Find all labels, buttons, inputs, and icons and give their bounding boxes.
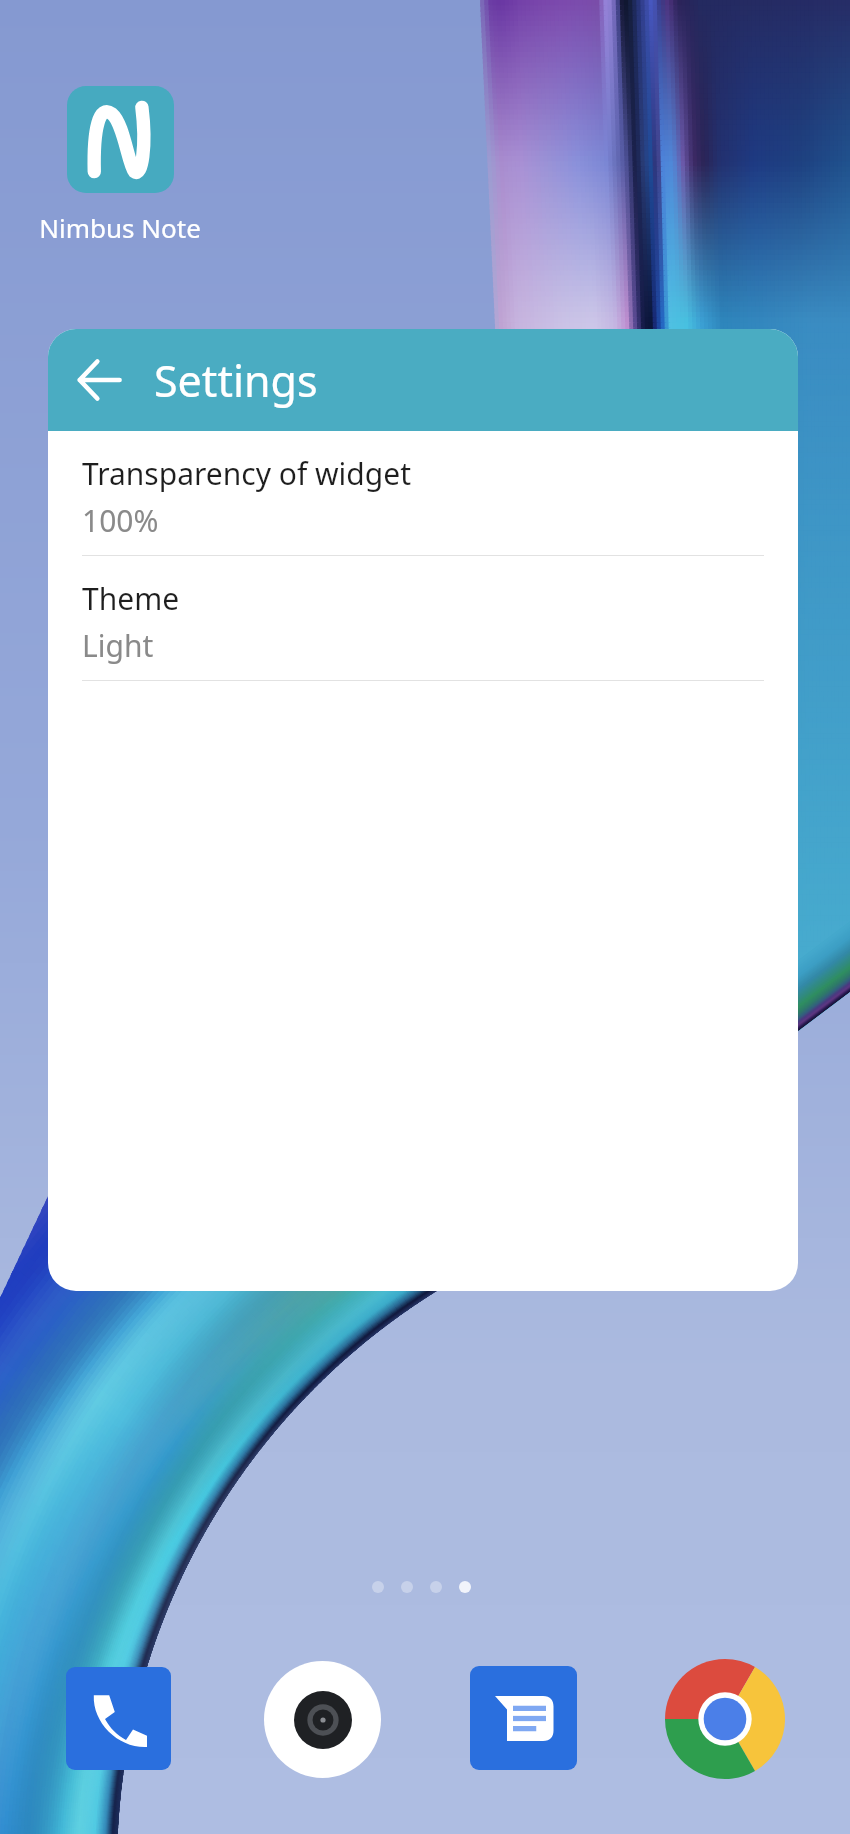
staticText: Theme [82, 578, 180, 619]
button[interactable]: Phone [66, 1667, 171, 1770]
staticText: Nimbus Note [39, 210, 201, 245]
staticText: 100% [82, 500, 159, 541]
button[interactable]: Nimbus Note [36, 86, 204, 245]
staticText: Settings [154, 351, 318, 410]
button[interactable]: Camera [264, 1661, 381, 1778]
button[interactable]: Back [48, 329, 150, 431]
staticText: Transparency of widget [82, 453, 411, 494]
button[interactable]: Transparency of widget [48, 431, 798, 556]
staticText: Light [82, 625, 154, 666]
button[interactable]: Theme [48, 556, 798, 681]
button[interactable]: Messages [470, 1666, 577, 1770]
button[interactable]: Chrome [665, 1659, 785, 1779]
